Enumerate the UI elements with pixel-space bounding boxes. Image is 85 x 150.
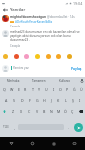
staticText: H bbox=[43, 98, 46, 103]
staticText: D bbox=[21, 98, 24, 103]
button[interactable]: Emoji bbox=[67, 54, 72, 59]
button[interactable]: Ş bbox=[69, 95, 76, 106]
button[interactable]: Back bbox=[0, 137, 22, 150]
button[interactable]: K bbox=[55, 95, 62, 106]
staticText: E bbox=[18, 87, 20, 92]
staticText: S bbox=[13, 98, 15, 103]
button[interactable]: Emoji bbox=[14, 54, 19, 59]
button[interactable]: Voice input bbox=[78, 77, 85, 84]
staticText: , bbox=[14, 125, 15, 130]
staticText: W bbox=[10, 87, 14, 92]
staticText: P bbox=[66, 87, 69, 92]
button[interactable]: Kullanıcı bbox=[52, 77, 78, 84]
staticText: mightofdoomshootgun bbox=[10, 15, 46, 19]
staticText: A bbox=[5, 98, 8, 103]
button[interactable]: B bbox=[41, 106, 48, 117]
button[interactable]: M bbox=[55, 106, 62, 117]
button[interactable]: Backspace bbox=[76, 106, 85, 117]
button[interactable]: Hide keyboard bbox=[64, 137, 85, 150]
button[interactable]: ?123 bbox=[0, 117, 11, 137]
button[interactable]: I bbox=[50, 84, 57, 95]
button[interactable]: Emoji bbox=[35, 54, 40, 59]
staticText: Ö bbox=[64, 109, 67, 114]
button[interactable]: R bbox=[22, 84, 29, 95]
staticText: Z bbox=[12, 109, 15, 114]
button[interactable]: Tamamen bbox=[26, 77, 52, 84]
button[interactable]: Home bbox=[22, 137, 43, 150]
staticText: Paylaş bbox=[71, 66, 82, 70]
button[interactable]: T bbox=[29, 84, 36, 95]
staticText: #DeYouthYesorKaranlikBiz bbox=[15, 20, 53, 24]
button[interactable]: O bbox=[57, 84, 64, 95]
staticText: @doomsbullet · 14s bbox=[47, 15, 75, 19]
button[interactable]: S bbox=[10, 95, 18, 106]
button[interactable]: J bbox=[48, 95, 55, 106]
staticText: Yanıtlar bbox=[10, 7, 26, 13]
staticText: Ş bbox=[72, 98, 74, 103]
button[interactable]: I bbox=[76, 95, 83, 106]
button[interactable]: N bbox=[48, 106, 55, 117]
staticText: Y bbox=[38, 87, 41, 92]
staticText: Kullanıcı bbox=[59, 79, 71, 83]
button[interactable]: Back bbox=[0, 6, 10, 14]
staticText: Tamamen bbox=[32, 79, 46, 83]
staticText: T bbox=[32, 87, 34, 92]
button[interactable]: Emoji bbox=[46, 54, 51, 59]
button[interactable]: D bbox=[18, 95, 26, 106]
button[interactable]: X bbox=[17, 106, 25, 117]
button[interactable]: V bbox=[33, 106, 41, 117]
button[interactable]: Ç bbox=[69, 106, 76, 117]
staticText: U bbox=[45, 87, 48, 92]
button[interactable]: Emoji bbox=[3, 54, 8, 59]
staticText: Yanıtını yaz bbox=[13, 66, 29, 70]
staticText: I bbox=[53, 87, 55, 92]
staticText: X bbox=[20, 109, 23, 114]
staticText: . bbox=[68, 125, 69, 130]
staticText: G bbox=[36, 98, 39, 103]
staticText: Cevapla bbox=[10, 25, 20, 27]
button[interactable]: W bbox=[8, 84, 15, 95]
staticText: methad23 durumunun en cok kazanilan olma… bbox=[10, 30, 83, 42]
staticText: J bbox=[51, 98, 52, 103]
button[interactable]: L bbox=[62, 95, 69, 106]
button[interactable]: Emoji bbox=[56, 54, 61, 59]
button[interactable]: Q bbox=[0, 84, 8, 95]
button[interactable]: Ğ bbox=[71, 84, 78, 95]
staticText: V bbox=[36, 109, 39, 114]
button[interactable]: E bbox=[15, 84, 22, 95]
button[interactable]: Shift bbox=[0, 106, 9, 117]
button[interactable]: A bbox=[2, 95, 10, 106]
staticText: Ü bbox=[80, 87, 83, 92]
button[interactable]: Emoji bbox=[24, 54, 29, 59]
staticText: R bbox=[24, 87, 27, 92]
staticText: Merhaba bbox=[7, 79, 20, 83]
staticText: K bbox=[57, 98, 60, 103]
button[interactable]: Merhaba bbox=[0, 77, 26, 84]
button[interactable]: C bbox=[25, 106, 33, 117]
button[interactable]: Ü bbox=[78, 84, 85, 95]
button[interactable]: U bbox=[43, 84, 50, 95]
button[interactable]: Ö bbox=[62, 106, 69, 117]
staticText: M bbox=[57, 109, 61, 114]
staticText: Q bbox=[3, 87, 6, 92]
staticText: Ğ bbox=[73, 87, 76, 92]
button[interactable]: F bbox=[26, 95, 34, 106]
button[interactable]: Paylaş bbox=[70, 65, 83, 69]
button[interactable]: Z bbox=[9, 106, 17, 117]
button[interactable]: H bbox=[41, 95, 48, 106]
staticText: F bbox=[29, 98, 31, 103]
button[interactable]: Y bbox=[36, 84, 43, 95]
button[interactable]: Recents bbox=[43, 137, 64, 150]
staticText: I bbox=[79, 98, 81, 103]
button[interactable]: Send bbox=[74, 123, 83, 132]
staticText: B bbox=[43, 109, 46, 114]
staticText: L bbox=[65, 98, 67, 103]
staticText: C bbox=[28, 109, 31, 114]
staticText: O bbox=[59, 87, 62, 92]
button[interactable]: P bbox=[64, 84, 71, 95]
button[interactable]: G bbox=[34, 95, 41, 106]
staticText: 19:04 bbox=[73, 1, 83, 6]
